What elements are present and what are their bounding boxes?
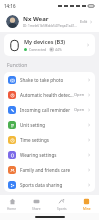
staticText: Unit setting (20, 122, 87, 128)
staticText: Share (32, 207, 41, 211)
staticText: 44% (55, 47, 62, 52)
staticText: Wearing settings (20, 152, 87, 158)
staticText: Incoming call reminder (20, 107, 74, 113)
staticText: Family and friends care (20, 167, 87, 173)
staticText: 14:16 (4, 3, 16, 9)
button[interactable]: Wearing settings (4, 147, 95, 162)
button[interactable]: Sports data sharing (4, 177, 95, 192)
button[interactable]: My devices (B3) (4, 34, 95, 56)
staticText: Shake to take photo (20, 77, 87, 83)
button[interactable]: Family and friends care (4, 162, 95, 177)
button[interactable]: Incoming call reminder (4, 102, 95, 117)
button[interactable]: Sports (49, 195, 74, 213)
staticText: Connected (29, 47, 47, 52)
staticText: Sports (57, 207, 67, 211)
button[interactable]: Unit setting (4, 117, 95, 132)
staticText: Open (74, 92, 85, 97)
button[interactable]: Automatic health detection (4, 87, 95, 102)
button[interactable]: Mine (74, 195, 99, 213)
staticText: Sports data sharing (20, 182, 87, 188)
button[interactable]: Shake to take photo (4, 72, 95, 87)
staticText: Function (7, 62, 28, 69)
staticText: Automatic health detection (20, 92, 74, 98)
button[interactable]: Time settings (4, 132, 95, 147)
staticText: Mine (83, 207, 91, 211)
staticText: My devices (B3) (24, 38, 66, 45)
staticText: Edit (80, 19, 88, 24)
button[interactable]: Share (24, 195, 49, 213)
staticText: Time settings (20, 137, 87, 143)
staticText: Home (7, 207, 17, 211)
staticText: ID: 1mele61b5f8dcb547feqa41a416ea902b45b… (23, 24, 77, 28)
button[interactable]: Nx Wear (0, 11, 99, 32)
staticText: Open (74, 107, 85, 112)
button[interactable]: Home (0, 195, 24, 213)
staticText: Nx Wear (23, 15, 49, 23)
